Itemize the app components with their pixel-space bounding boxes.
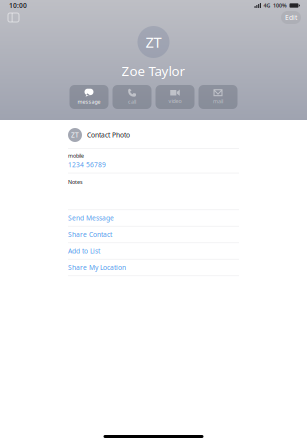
button[interactable]: Share Contact [68,227,239,242]
button[interactable]: call [112,85,151,109]
staticText: 1234 56789 [68,160,106,169]
staticText: ZT [145,32,161,52]
staticText: Share My Location [68,263,126,272]
staticText: video [168,97,181,105]
staticText: Send Message [68,214,114,222]
button[interactable]: Send Message [68,210,239,226]
button[interactable]: ZT [68,122,239,148]
staticText: message [77,98,100,105]
staticText: mobile [68,152,84,159]
staticText: mail [213,98,223,105]
staticText: 10:00 [9,1,27,10]
button[interactable]: Notes [68,173,239,209]
button[interactable]: Edit [281,11,301,24]
staticText: Edit [285,13,297,22]
staticText: Notes [68,178,83,185]
staticText: Share Contact [68,230,112,239]
button[interactable]: video [155,85,194,109]
button[interactable]: message [69,85,108,109]
button[interactable]: Share My Location [68,260,239,275]
staticText: Zoe Taylor [121,62,185,80]
button[interactable]: Show sidebar [6,11,21,24]
staticText: ZT [71,131,79,139]
button[interactable]: Add to List [68,243,239,259]
staticText: 4G [263,2,270,9]
staticText: call [128,98,136,105]
button[interactable]: mail [198,85,237,109]
staticText: Contact Photo [87,131,130,139]
button[interactable]: mobile [68,149,239,173]
staticText: 100% [273,2,287,9]
staticText: Add to List [68,247,100,255]
